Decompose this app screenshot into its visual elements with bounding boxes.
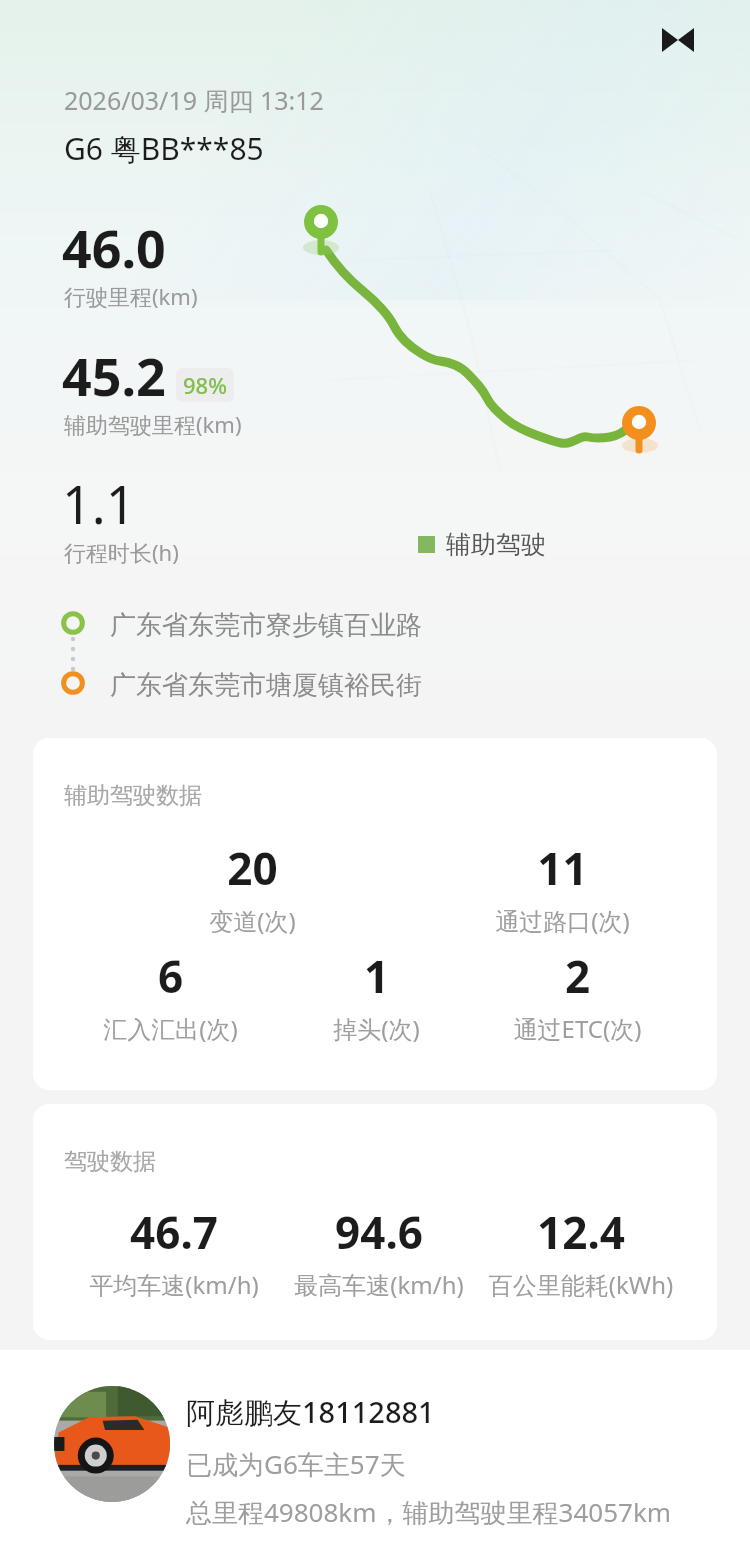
staticText: 2026/03/19 周四 13:12 [64, 83, 324, 117]
staticText: 行程时长(h) [64, 537, 179, 567]
staticText: 阿彪鹏友18112881 [186, 1392, 435, 1432]
staticText: 掉头(次) [279, 1012, 474, 1045]
button[interactable]: 辅助驾驶数据 [33, 738, 717, 1090]
button[interactable]: 20 [155, 838, 350, 937]
staticText: 94.6 [274, 1202, 484, 1262]
staticText: 20 [155, 838, 350, 898]
button[interactable]: Close [646, 8, 710, 72]
staticText: G6 粤BB***85 [64, 128, 264, 169]
staticText: 12.4 [476, 1202, 686, 1262]
staticText: 已成为G6车主57天 [186, 1446, 406, 1482]
staticText: 98% [183, 370, 227, 400]
staticText: 11 [465, 838, 660, 898]
button[interactable]: 94.6 [274, 1202, 484, 1301]
staticText: 通过路口(次) [465, 904, 660, 937]
button[interactable]: 11 [465, 838, 660, 937]
staticText: 变道(次) [155, 904, 350, 937]
button[interactable]: 1 [279, 946, 474, 1045]
button[interactable]: 驾驶数据 [33, 1104, 717, 1340]
staticText: 2 [480, 946, 675, 1006]
staticText: 广东省东莞市塘厦镇裕民街 [110, 669, 422, 702]
staticText: 46.0 [62, 212, 166, 283]
button[interactable]: 阿彪鹏友18112881 [0, 1350, 750, 1543]
staticText: 1 [279, 946, 474, 1006]
staticText: 1.1 [62, 468, 136, 539]
staticText: 46.7 [69, 1202, 279, 1262]
staticText: 辅助驾驶 [446, 529, 546, 560]
staticText: 汇入汇出(次) [73, 1012, 268, 1045]
staticText: 6 [73, 946, 268, 1006]
staticText: 总里程49808km，辅助驾驶里程34057km [186, 1494, 672, 1530]
staticText: 通过ETC(次) [480, 1012, 675, 1045]
staticText: 辅助驾驶里程(km) [64, 409, 242, 439]
staticText: 平均车速(km/h) [69, 1268, 279, 1301]
staticText: 驾驶数据 [64, 1147, 156, 1176]
button[interactable]: 12.4 [476, 1202, 686, 1301]
button[interactable]: 46.7 [69, 1202, 279, 1301]
staticText: 百公里能耗(kWh) [476, 1268, 686, 1301]
staticText: 行驶里程(km) [64, 281, 198, 311]
button[interactable]: 2 [480, 946, 675, 1045]
staticText: 45.2 [62, 340, 166, 411]
button[interactable]: 6 [73, 946, 268, 1045]
staticText: 最高车速(km/h) [274, 1268, 484, 1301]
staticText: 辅助驾驶数据 [64, 781, 202, 810]
staticText: 广东省东莞市寮步镇百业路 [110, 609, 422, 642]
